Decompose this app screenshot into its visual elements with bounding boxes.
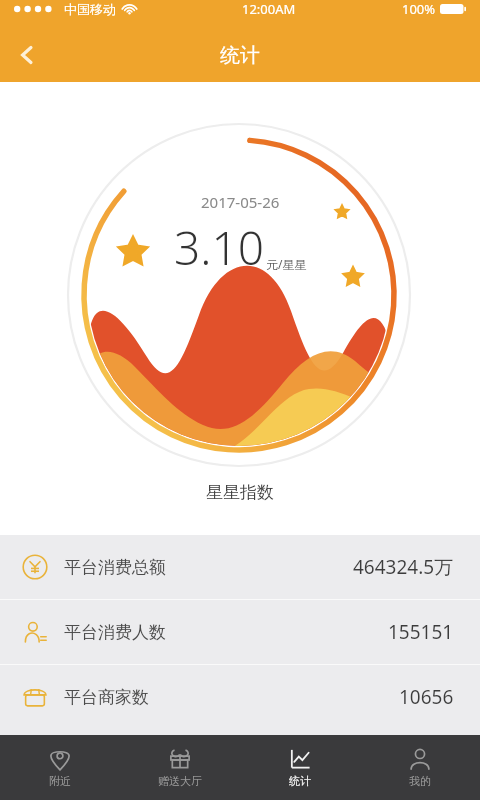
staticText: 464324.5万 xyxy=(353,554,454,580)
staticText: 平台商家数 xyxy=(64,687,149,708)
staticText: 附近 xyxy=(49,774,71,788)
staticText: 我的 xyxy=(409,774,431,788)
button[interactable]: 平台消费人数 xyxy=(0,600,480,664)
button[interactable]: 平台商家数 xyxy=(0,665,480,729)
staticText: 平台消费总额 xyxy=(64,557,166,578)
staticText: 100% xyxy=(402,0,436,18)
staticText: 中国移动 xyxy=(64,1,116,17)
staticText: 3.10 xyxy=(174,216,265,279)
staticText: 元/星星 xyxy=(266,256,307,272)
button[interactable]: 附近 xyxy=(0,735,120,800)
staticText: 平台消费人数 xyxy=(64,622,166,643)
button[interactable]: 我的 xyxy=(360,735,480,800)
button[interactable]: 统计 xyxy=(240,735,360,800)
staticText: 155151 xyxy=(388,619,454,645)
staticText: 10656 xyxy=(399,684,454,710)
button[interactable]: Back xyxy=(0,28,54,82)
staticText: 赠送大厅 xyxy=(158,774,202,788)
button[interactable]: 赠送大厅 xyxy=(120,735,240,800)
staticText: 统计 xyxy=(289,774,311,788)
staticText: 星星指数 xyxy=(0,482,480,503)
staticText: 2017-05-26 xyxy=(201,192,280,212)
button[interactable]: 平台消费总额 xyxy=(0,535,480,599)
staticText: 12:00AM xyxy=(242,0,296,18)
staticText: 统计 xyxy=(220,43,260,68)
